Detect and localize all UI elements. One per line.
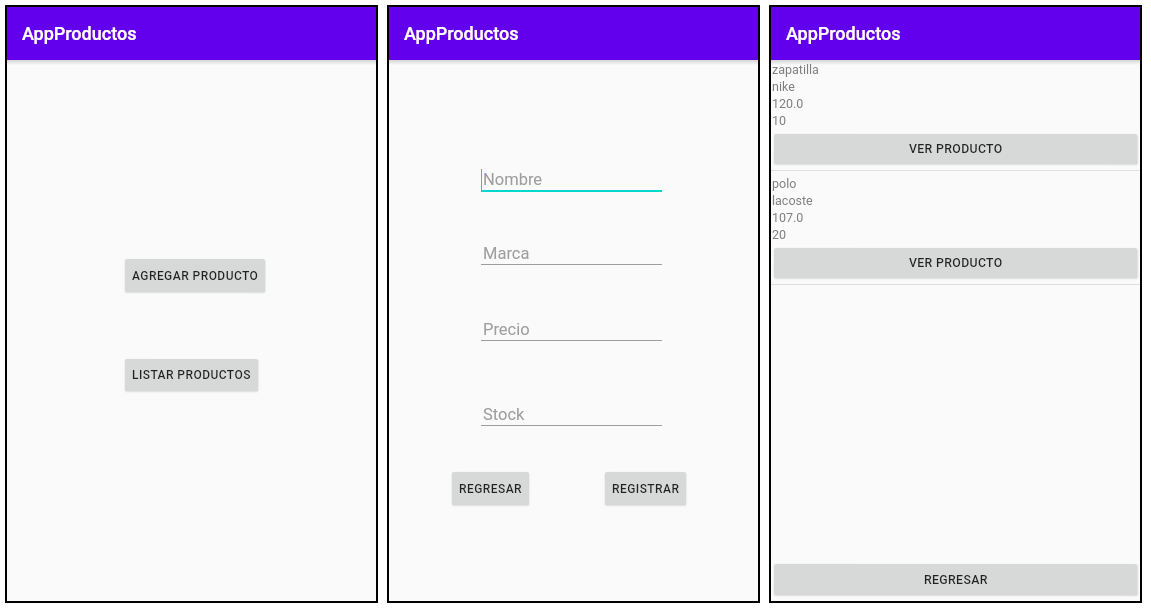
staticText: AppProductos	[404, 23, 519, 44]
staticText: 120.0	[772, 96, 1140, 111]
staticText: nike	[772, 79, 1140, 94]
other: Product list screen	[771, 7, 1140, 601]
button[interactable]: AGREGAR PRODUCTO	[125, 259, 265, 292]
button[interactable]: LISTAR PRODUCTOS	[125, 359, 258, 391]
staticText: polo	[772, 176, 1140, 191]
button[interactable]: polo	[771, 173, 1140, 287]
staticText: REGRESAR	[459, 482, 523, 496]
staticText: lacoste	[772, 193, 1140, 208]
button[interactable]: REGRESAR	[452, 472, 529, 505]
staticText: Precio	[483, 320, 530, 339]
button[interactable]: VER PRODUCTO	[774, 248, 1137, 278]
button[interactable]: REGRESAR	[774, 564, 1137, 595]
button[interactable]: zapatilla	[771, 59, 1140, 173]
staticText: 10	[772, 113, 1140, 128]
button[interactable]: VER PRODUCTO	[774, 134, 1137, 164]
staticText: 107.0	[772, 210, 1140, 225]
button[interactable]: Marca	[481, 242, 662, 264]
staticText: AGREGAR PRODUCTO	[132, 269, 259, 283]
other: Add product form screen	[389, 7, 758, 601]
staticText: REGISTRAR	[612, 482, 680, 496]
button[interactable]: Nombre	[481, 168, 662, 190]
staticText: AppProductos	[786, 23, 901, 44]
button[interactable]: Precio	[481, 318, 662, 340]
staticText: zapatilla	[772, 62, 1140, 77]
staticText: 20	[772, 227, 1140, 242]
staticText: VER PRODUCTO	[909, 256, 1003, 270]
other: Main menu screen	[7, 7, 376, 601]
staticText: LISTAR PRODUCTOS	[132, 368, 251, 382]
button[interactable]: REGISTRAR	[605, 472, 686, 505]
staticText: Nombre	[483, 170, 543, 189]
staticText: Marca	[483, 244, 530, 263]
staticText: Stock	[483, 405, 525, 424]
staticText: VER PRODUCTO	[909, 142, 1003, 156]
button[interactable]: Stock	[481, 403, 662, 425]
staticText: AppProductos	[22, 23, 137, 44]
staticText: REGRESAR	[924, 573, 988, 587]
